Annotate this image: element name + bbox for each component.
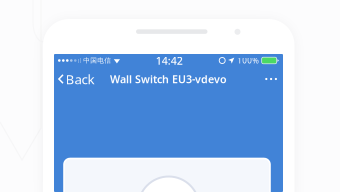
staticText: ıl bbox=[78, 56, 82, 65]
button[interactable]: More options bbox=[257, 72, 283, 86]
button[interactable]: Back bbox=[54, 66, 100, 92]
staticText: Wall Switch EU3-vdevo bbox=[110, 72, 227, 86]
staticText: 中国电信 bbox=[83, 56, 111, 65]
staticText: 14:42 bbox=[156, 53, 183, 68]
staticText: 100% bbox=[237, 55, 259, 66]
staticText: Back bbox=[65, 70, 94, 88]
